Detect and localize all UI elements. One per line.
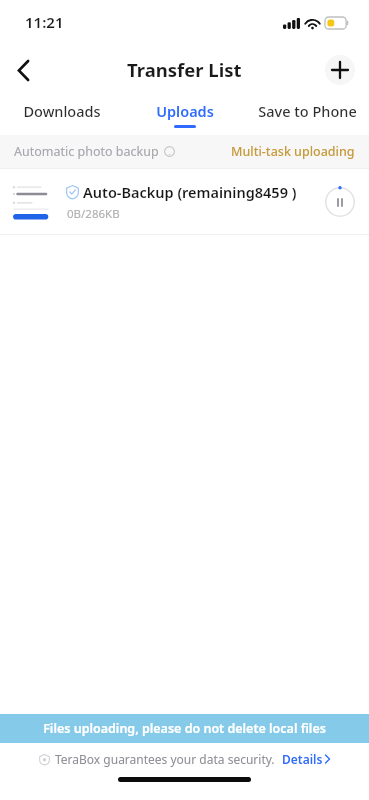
staticText: Downloads <box>23 101 101 121</box>
button[interactable]: Auto-Backup (remaining8459 ) <box>0 169 369 234</box>
button[interactable]: Automatic photo backup <box>14 143 175 160</box>
staticText: TeraBox guarantees your data security. <box>55 751 275 767</box>
button[interactable]: Add transfer <box>325 55 355 85</box>
staticText: Uploads <box>156 101 214 121</box>
button[interactable]: Downloads <box>0 93 123 135</box>
button[interactable]: Uploads <box>123 93 246 135</box>
staticText: Details <box>282 751 323 767</box>
staticText: Transfer List <box>127 57 242 82</box>
button[interactable]: Back <box>0 47 46 93</box>
button[interactable]: Pause upload <box>325 187 355 217</box>
staticText: Auto-Backup (remaining8459 ) <box>83 182 297 202</box>
staticText: Save to Phone <box>258 101 357 121</box>
button[interactable]: Multi-task uploading <box>231 143 355 160</box>
button[interactable]: Save to Phone <box>246 93 369 135</box>
staticText: 0B/286KB <box>67 206 120 222</box>
staticText: 11:21 <box>25 12 64 32</box>
staticText: Files uploading, please do not delete lo… <box>43 720 326 737</box>
staticText: Automatic photo backup <box>14 143 159 160</box>
button[interactable]: Details <box>282 751 330 767</box>
